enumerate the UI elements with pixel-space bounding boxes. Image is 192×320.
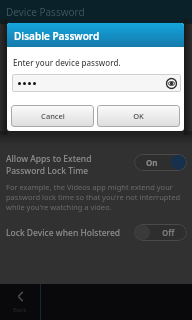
button[interactable]: Off — [134, 224, 187, 241]
button[interactable]: Show password — [166, 78, 177, 89]
staticText: Enter your device password. — [13, 57, 121, 68]
button[interactable]: Cancel — [11, 105, 94, 127]
button[interactable]: Back — [0, 284, 40, 320]
staticText: Lock Device when Holstered — [6, 227, 134, 239]
staticText: Device Password — [6, 5, 85, 19]
staticText: Password Lock Time — [6, 165, 89, 177]
staticText: OK — [133, 111, 144, 121]
staticText: On — [146, 157, 158, 168]
staticText: Allow Apps to Extend — [6, 153, 92, 165]
staticText: Cancel — [41, 111, 65, 121]
staticText: Disable Password — [14, 29, 100, 43]
staticText: Off — [162, 227, 175, 238]
button[interactable]: On — [134, 154, 187, 171]
staticText: Back — [13, 306, 27, 314]
button[interactable]: Show password — [12, 74, 181, 92]
button[interactable]: OK — [97, 105, 180, 127]
button[interactable]: Lock Device when Holstered — [0, 224, 192, 242]
button[interactable]: Allow Apps to Extend — [0, 151, 192, 179]
staticText: For example, the Videos app might extend… — [6, 182, 181, 212]
